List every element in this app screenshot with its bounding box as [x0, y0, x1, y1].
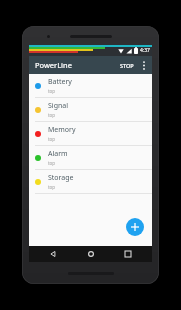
button[interactable]: STOP: [117, 60, 137, 71]
staticText: PowerLine: [35, 60, 72, 70]
button[interactable]: Home: [78, 246, 104, 262]
staticText: top: [48, 160, 56, 166]
button[interactable]: Storage: [29, 170, 152, 194]
button[interactable]: Back: [40, 246, 66, 262]
button[interactable]: Memory: [29, 122, 152, 146]
button[interactable]: Signal: [29, 98, 152, 122]
staticText: Battery: [48, 77, 72, 87]
staticText: Signal: [48, 101, 69, 111]
staticText: top: [48, 88, 56, 94]
staticText: Alarm: [48, 149, 68, 159]
staticText: STOP: [120, 62, 134, 69]
staticText: top: [48, 112, 56, 118]
button[interactable]: Add: [126, 218, 144, 236]
staticText: top: [48, 184, 56, 190]
staticText: 4:37: [140, 47, 150, 54]
button[interactable]: Battery: [29, 74, 152, 98]
button[interactable]: Alarm: [29, 146, 152, 170]
button[interactable]: More options: [139, 56, 149, 74]
staticText: top: [48, 136, 56, 142]
staticText: Storage: [48, 173, 74, 183]
staticText: Memory: [48, 125, 76, 135]
button[interactable]: Recent apps: [115, 246, 141, 262]
